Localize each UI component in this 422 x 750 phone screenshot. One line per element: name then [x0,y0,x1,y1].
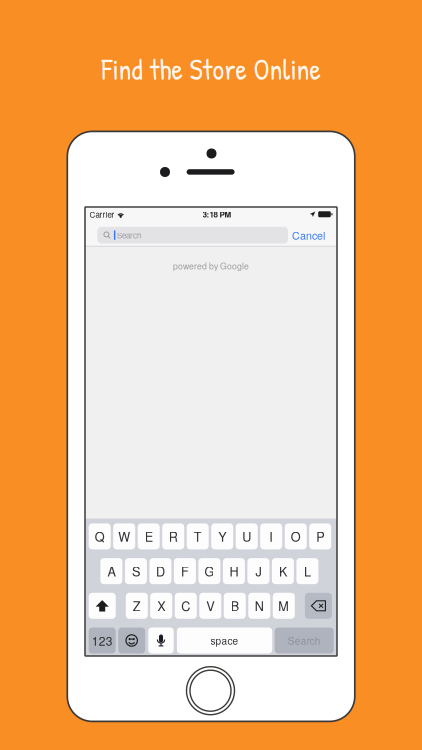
button[interactable]: O [285,523,307,549]
button[interactable]: T [187,523,209,549]
staticText: space [211,633,239,648]
button[interactable]: V [199,593,221,619]
button[interactable]: Search [275,627,334,653]
button[interactable]: U [236,523,258,549]
staticText: I [269,527,273,545]
staticText: Y [218,527,226,545]
button[interactable]: Q [89,523,111,549]
staticText: B [231,597,239,615]
staticText: P [316,527,324,545]
staticText: T [194,527,202,545]
staticText: Find the Store Online [101,50,320,89]
staticText: R [169,527,178,545]
button[interactable]: Dictation [148,627,174,653]
button[interactable]: I [260,523,282,549]
staticText: N [255,597,264,615]
button[interactable]: Delete [305,593,332,619]
staticText: W [118,527,130,545]
staticText: Q [95,527,105,545]
button[interactable]: F [174,558,196,584]
staticText: D [156,562,165,580]
staticText: M [278,597,289,615]
button[interactable]: E [138,523,160,549]
staticText: G [204,562,214,580]
button[interactable]: M [273,593,295,619]
button[interactable]: 123 [89,627,116,653]
button[interactable]: H [223,558,245,584]
staticText: E [145,527,153,545]
button[interactable]: space [177,627,272,653]
staticText: 3:18 PM [203,208,232,220]
button[interactable]: K [272,558,294,584]
button[interactable]: Shift [89,593,116,619]
button[interactable]: P [309,523,331,549]
staticText: S [132,562,140,580]
staticText: O [291,527,301,545]
button[interactable]: G [198,558,220,584]
button[interactable]: A [100,558,122,584]
staticText: H [229,562,238,580]
button[interactable]: Emoji [118,627,145,653]
button[interactable]: D [149,558,171,584]
button[interactable]: B [224,593,246,619]
staticText: A [107,562,115,580]
staticText: F [181,562,189,580]
staticText: K [279,562,287,580]
staticText: Search [288,633,321,648]
staticText: Carrier [89,208,114,220]
staticText: V [206,597,214,615]
staticText: J [255,562,261,580]
button[interactable]: R [162,523,184,549]
staticText: L [304,562,311,580]
button[interactable]: N [248,593,270,619]
staticText: Z [133,597,141,615]
button[interactable]: J [247,558,269,584]
button[interactable]: Z [126,593,148,619]
staticText: Search [117,229,141,241]
staticText: U [242,527,251,545]
staticText: powered by Google [173,259,249,272]
button[interactable]: S [125,558,147,584]
button[interactable]: W [113,523,135,549]
button[interactable]: L [296,558,318,584]
staticText: Cancel [292,227,325,243]
button[interactable]: Y [211,523,233,549]
button[interactable]: Search [97,227,288,243]
button[interactable]: C [175,593,197,619]
button[interactable]: Cancel [290,227,326,243]
staticText: 123 [92,632,113,649]
staticText: C [181,597,190,615]
staticText: X [157,597,165,615]
button[interactable]: X [150,593,172,619]
